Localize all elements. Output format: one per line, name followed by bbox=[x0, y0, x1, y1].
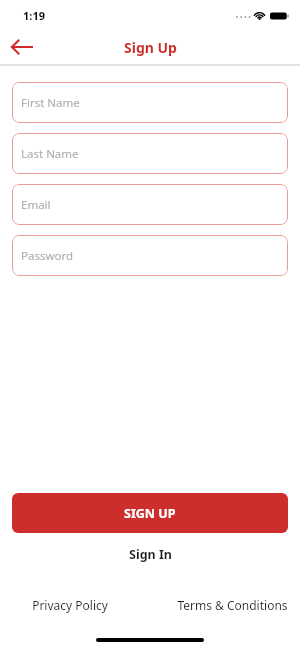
staticText: Terms & Conditions bbox=[177, 597, 288, 613]
staticText: Privacy Policy bbox=[32, 597, 108, 613]
staticText: Sign In bbox=[129, 546, 172, 563]
staticText: First Name bbox=[21, 95, 80, 111]
staticText: Last Name bbox=[21, 146, 79, 162]
staticText: Email bbox=[21, 197, 51, 213]
staticText: SIGN UP bbox=[124, 505, 176, 522]
button[interactable]: Password bbox=[12, 235, 288, 276]
button[interactable]: Back bbox=[0, 30, 44, 64]
button[interactable]: SIGN UP bbox=[12, 493, 288, 533]
staticText: 1:19 bbox=[23, 8, 45, 23]
button[interactable]: Last Name bbox=[12, 133, 288, 174]
button[interactable]: First Name bbox=[12, 82, 288, 123]
button[interactable]: Email bbox=[12, 184, 288, 225]
staticText: Sign Up bbox=[124, 38, 177, 57]
staticText: Password bbox=[21, 248, 74, 264]
button[interactable]: Terms & Conditions bbox=[177, 594, 288, 616]
button[interactable]: Privacy Policy bbox=[12, 594, 128, 616]
button[interactable]: Sign In bbox=[117, 543, 184, 566]
